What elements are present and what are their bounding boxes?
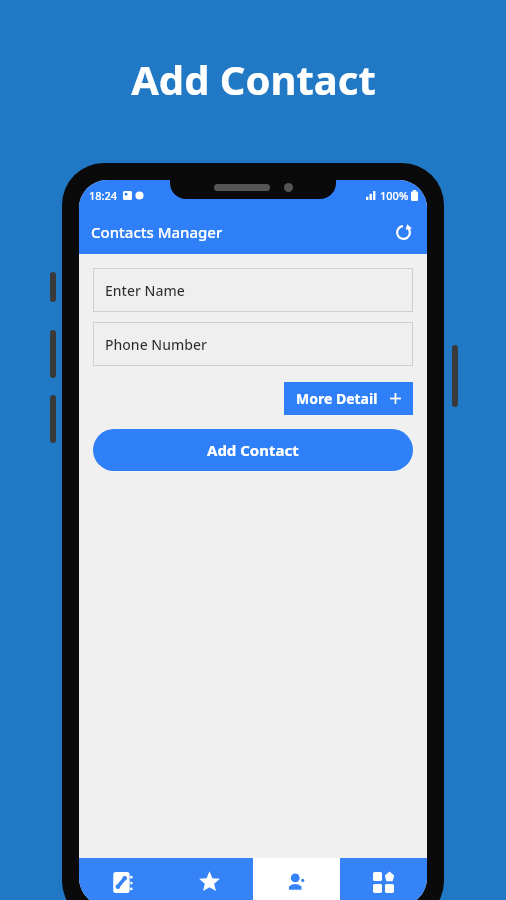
button[interactable]: Contacts — [79, 858, 166, 900]
button[interactable]: Favorites — [166, 858, 253, 900]
staticText: More Detail — [296, 389, 378, 408]
staticText: Phone Number — [105, 335, 207, 354]
staticText: Add Contact — [131, 52, 376, 106]
staticText: Enter Name — [105, 281, 185, 300]
staticText: Contacts Manager — [91, 222, 223, 242]
staticText: Add Contact — [207, 440, 299, 460]
button[interactable]: Phone Number — [93, 322, 413, 366]
button[interactable]: Refresh — [388, 217, 418, 247]
button[interactable]: More Detail — [284, 382, 413, 415]
button[interactable]: Add Contact — [93, 429, 413, 471]
staticText: 100% — [380, 188, 409, 203]
button[interactable]: Enter Name — [93, 268, 413, 312]
button[interactable]: Add contact — [253, 858, 340, 900]
button[interactable]: Apps — [340, 858, 427, 900]
staticText: 18:24 — [89, 188, 118, 203]
